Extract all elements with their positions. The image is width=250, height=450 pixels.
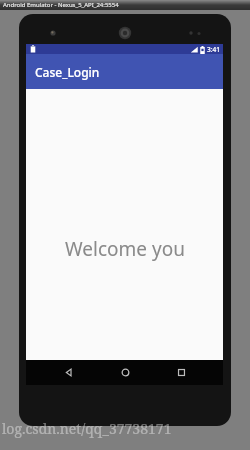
staticText: Android Emulator - Nexus_5_API_24:5554 [3,1,119,9]
button[interactable]: Case_Login [26,54,223,89]
button[interactable]: Recent apps [166,360,196,385]
staticText: Case_Login [35,64,100,80]
button[interactable]: Home [110,360,140,385]
staticText: 3:41 [207,45,220,54]
staticText: Welcome you [65,236,185,262]
button[interactable]: Back [53,360,83,385]
staticText: log.csdn.net/qq_37738171 [2,419,172,438]
